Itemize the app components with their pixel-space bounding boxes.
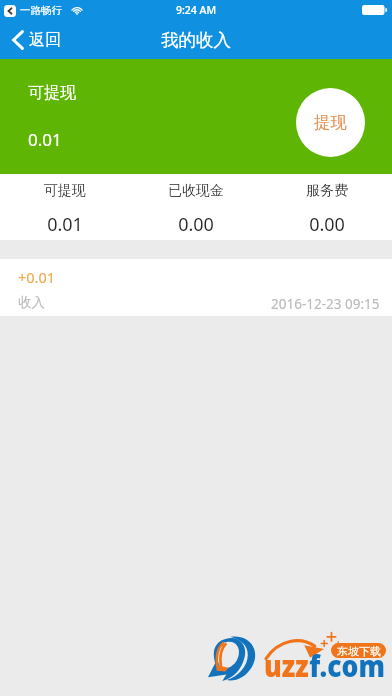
staticText: 0.00 (178, 212, 214, 237)
staticText: 0.01 (47, 212, 83, 237)
staticText: 返回 (29, 30, 61, 50)
staticText: 已收现金 (168, 182, 224, 200)
staticText: 0.01 (28, 128, 62, 151)
button[interactable]: 可提现 (0, 174, 130, 240)
staticText: 我的收入 (161, 29, 231, 51)
button[interactable]: Back to previous app (4, 5, 16, 17)
staticText: 东坡下载 (337, 644, 381, 658)
staticText: 2016-12-23 09:15 (271, 295, 380, 313)
staticText: 0.00 (309, 212, 345, 237)
staticText: 可提现 (44, 182, 86, 200)
staticText: 提现 (314, 112, 347, 133)
button[interactable]: +0.01 (0, 259, 392, 316)
staticText: 服务费 (306, 182, 348, 200)
staticText: +0.01 (18, 267, 56, 287)
button[interactable]: 返回 (0, 25, 73, 55)
staticText: 9:24 AM (176, 3, 217, 17)
staticText: f.com (309, 645, 385, 686)
staticText: 可提现 (28, 83, 76, 103)
staticText: 收入 (18, 294, 45, 311)
staticText: 一路畅行 (20, 4, 62, 17)
button[interactable]: 服务费 (261, 174, 392, 240)
staticText: uzz (264, 645, 309, 686)
button[interactable]: 提现 (296, 88, 365, 157)
button[interactable]: 已收现金 (130, 174, 261, 240)
